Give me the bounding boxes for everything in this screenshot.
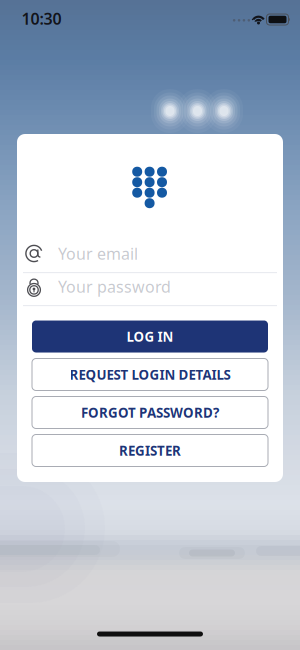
- button[interactable]: REGISTER: [32, 434, 268, 466]
- staticText: LOG IN: [126, 328, 173, 345]
- staticText: Your password: [58, 276, 171, 297]
- button[interactable]: FORGOT PASSWORD?: [32, 396, 268, 428]
- button[interactable]: LOG IN: [32, 320, 268, 352]
- staticText: REQUEST LOGIN DETAILS: [69, 366, 230, 383]
- staticText: FORGOT PASSWORD?: [81, 404, 219, 421]
- staticText: 10:30: [21, 8, 61, 29]
- button[interactable]: REQUEST LOGIN DETAILS: [32, 358, 268, 390]
- staticText: REGISTER: [119, 442, 181, 459]
- staticText: Your email: [58, 243, 138, 264]
